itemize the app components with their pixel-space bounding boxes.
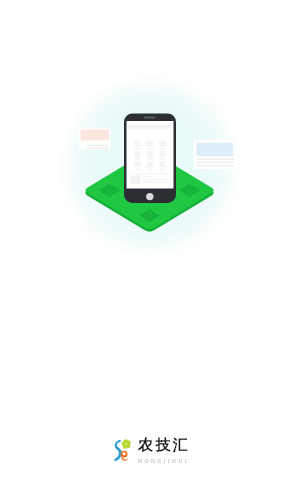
staticText: N O N G J I H U I bbox=[138, 457, 188, 464]
staticText: 农技汇 bbox=[138, 436, 190, 455]
